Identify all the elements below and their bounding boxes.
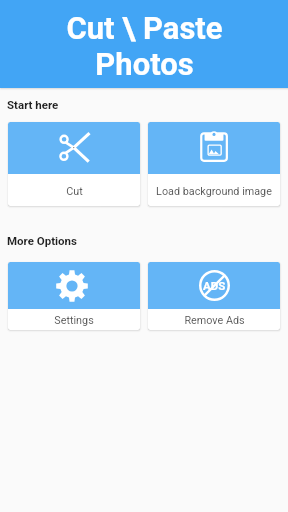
staticText: Cut bbox=[66, 185, 83, 198]
staticText: Remove Ads bbox=[184, 314, 245, 327]
staticText: Start here bbox=[7, 98, 59, 111]
button[interactable]: Settings bbox=[8, 262, 140, 330]
staticText: Settings bbox=[54, 314, 94, 327]
staticText: Cut \ Paste Photos bbox=[66, 10, 223, 82]
button[interactable]: Cut bbox=[8, 122, 140, 206]
staticText: ADS bbox=[203, 279, 226, 292]
staticText: Load background image bbox=[156, 185, 272, 198]
staticText: More Options bbox=[7, 234, 77, 247]
button[interactable]: Remove Ads bbox=[148, 262, 280, 330]
button[interactable]: Load background image bbox=[148, 122, 280, 206]
